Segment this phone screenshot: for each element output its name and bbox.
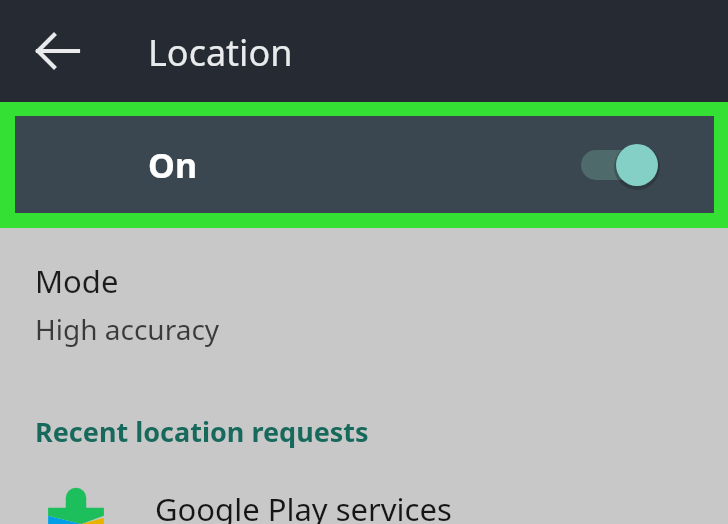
button[interactable]: Google Play services xyxy=(0,488,728,524)
staticText: High accuracy xyxy=(35,310,220,348)
button[interactable]: Mode xyxy=(0,228,728,358)
button[interactable]: On xyxy=(15,116,714,213)
staticText: On xyxy=(148,142,197,188)
button[interactable]: Back xyxy=(22,15,94,87)
staticText: Mode xyxy=(35,260,119,302)
staticText: Google Play services xyxy=(155,488,452,524)
button[interactable]: Location on/off toggle xyxy=(581,137,671,193)
staticText: Location xyxy=(148,28,293,77)
staticText: Recent location requests xyxy=(35,413,369,450)
